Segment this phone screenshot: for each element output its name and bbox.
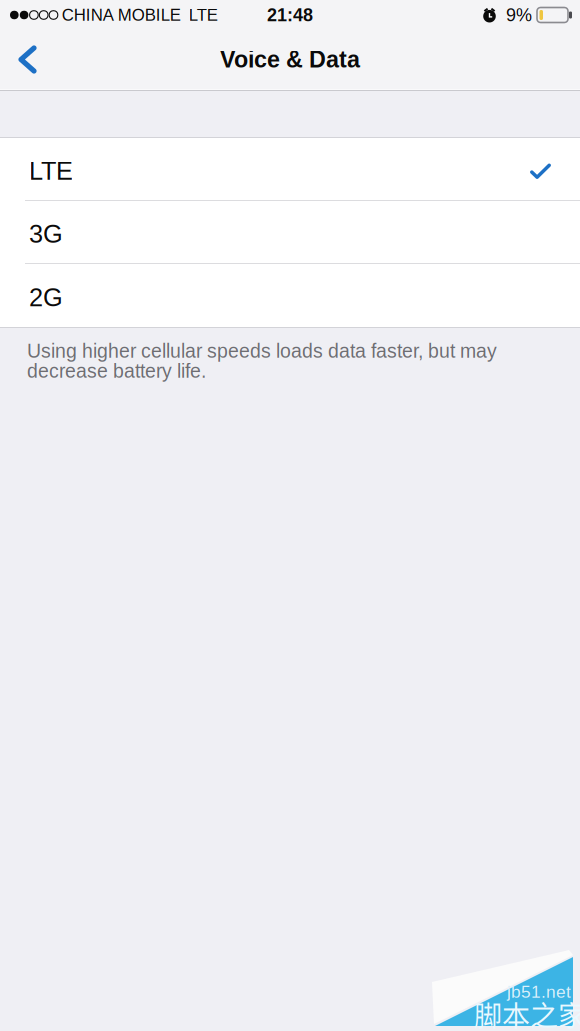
staticText: jb51.net (507, 982, 571, 1001)
staticText: LTE (29, 157, 73, 185)
button[interactable]: LTE (0, 138, 580, 201)
staticText: Using higher cellular speeds loads data … (27, 340, 497, 362)
staticText: 3G (29, 220, 63, 248)
staticText: CHINA MOBILE (62, 6, 181, 24)
staticText: 21:48 (267, 5, 313, 25)
staticText: 脚本之家 (474, 994, 580, 1031)
staticText: Voice & Data (220, 46, 360, 73)
staticText: decrease battery life. (27, 360, 206, 382)
button[interactable]: Back (0, 30, 55, 89)
button[interactable]: 3G (0, 201, 580, 264)
staticText: LTE (189, 6, 218, 24)
staticText: 9% (506, 5, 532, 25)
staticText: 2G (29, 283, 63, 312)
button[interactable]: 2G (0, 264, 580, 327)
